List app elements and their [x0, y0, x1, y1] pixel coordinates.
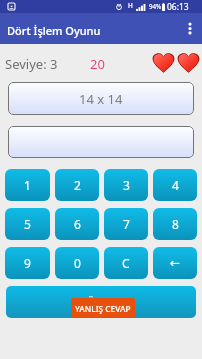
staticText: 14 x 14 [79, 90, 123, 108]
button[interactable]: GÖNDER [6, 286, 196, 318]
staticText: Seviye: 3 [5, 55, 58, 73]
button[interactable]: More options [176, 13, 202, 44]
staticText: H [128, 1, 133, 10]
staticText: YANLIŞ CEVAP [75, 303, 131, 314]
staticText: 94% [149, 2, 162, 10]
button[interactable]: 14 x 14 [8, 82, 194, 115]
button[interactable]: 1 [5, 169, 50, 201]
staticText: 9 [24, 255, 31, 271]
button[interactable]: 9 [5, 247, 50, 279]
staticText: 06:13 [167, 1, 189, 13]
staticText: 6 [74, 216, 81, 232]
button[interactable]: 2 [55, 169, 99, 201]
button[interactable]: 5 [5, 208, 50, 240]
button[interactable] [8, 126, 194, 158]
staticText: 4 [172, 177, 179, 193]
staticText: 5 [24, 216, 31, 232]
button[interactable]: 7 [104, 208, 148, 240]
button[interactable]: 4 [153, 169, 197, 201]
staticText: ← [170, 256, 181, 270]
staticText: C [122, 255, 130, 271]
staticText: 1 [24, 177, 31, 193]
button[interactable]: ← [153, 247, 197, 279]
staticText: 3 [123, 177, 130, 193]
staticText: 2 [74, 177, 81, 193]
staticText: Dört İşlem Oyunu [7, 23, 101, 38]
staticText: 20 [90, 55, 105, 73]
button[interactable]: 0 [55, 247, 99, 279]
button[interactable]: 8 [153, 208, 197, 240]
button[interactable]: C [104, 247, 148, 279]
button[interactable]: 6 [55, 208, 99, 240]
staticText: GÖNDER [79, 295, 124, 309]
staticText: 7 [123, 216, 130, 232]
staticText: 0 [74, 255, 81, 271]
button[interactable]: 3 [104, 169, 148, 201]
staticText: 8 [172, 216, 179, 232]
